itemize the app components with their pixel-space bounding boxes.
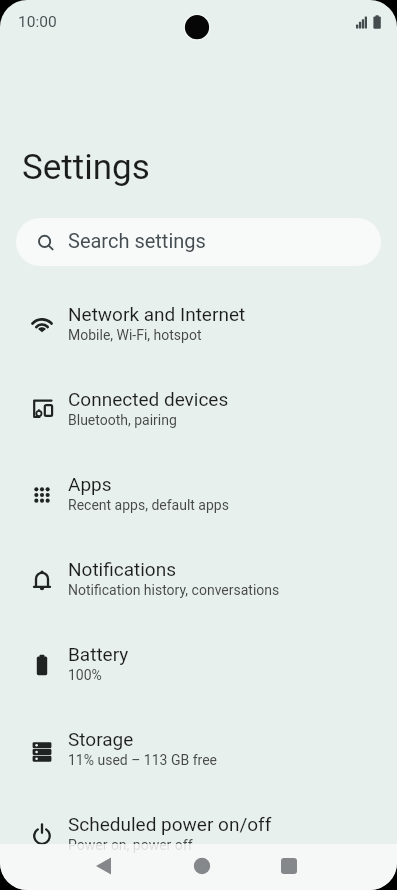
staticText: Bluetooth, pairing bbox=[68, 412, 177, 428]
staticText: Apps bbox=[68, 473, 112, 495]
button[interactable] bbox=[88, 850, 120, 882]
staticText: Battery bbox=[68, 643, 129, 665]
button[interactable]: Scheduled power on/off bbox=[0, 790, 397, 875]
staticText: Connected devices bbox=[68, 388, 229, 410]
button[interactable]: Battery bbox=[0, 620, 397, 705]
staticText: Recent apps, default apps bbox=[68, 497, 229, 513]
staticText: Search settings bbox=[68, 229, 206, 252]
staticText: 100% bbox=[68, 667, 102, 683]
staticText: Mobile, Wi-Fi, hotspot bbox=[68, 327, 202, 343]
staticText: Notification history, conversations bbox=[68, 582, 280, 598]
button[interactable]: Storage bbox=[0, 705, 397, 790]
staticText: 11% used – 113 GB free bbox=[68, 752, 217, 768]
button[interactable]: Notifications bbox=[0, 535, 397, 620]
staticText: Notifications bbox=[68, 558, 177, 580]
staticText: Scheduled power on/off bbox=[68, 813, 272, 835]
button[interactable] bbox=[273, 850, 305, 882]
staticText: Network and Internet bbox=[68, 303, 246, 325]
button[interactable]: Search settings bbox=[16, 218, 381, 266]
staticText: Settings bbox=[22, 147, 150, 188]
staticText: Storage bbox=[68, 728, 134, 750]
staticText: Power on, power off bbox=[68, 837, 193, 853]
button[interactable] bbox=[186, 850, 218, 882]
staticText: 10:00 bbox=[18, 13, 57, 31]
button[interactable]: Network and Internet bbox=[0, 280, 397, 365]
button[interactable]: Connected devices bbox=[0, 365, 397, 450]
button[interactable]: Apps bbox=[0, 450, 397, 535]
